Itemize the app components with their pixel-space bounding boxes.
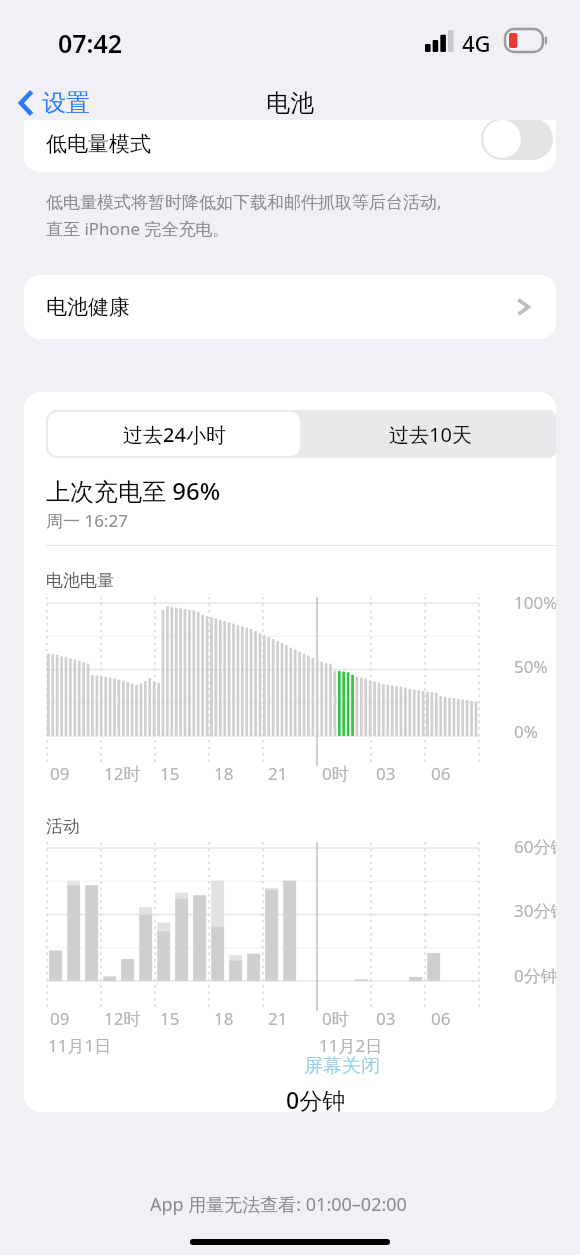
- staticText: 0时: [322, 1007, 349, 1030]
- staticText: 上次充电至 96%: [46, 474, 221, 507]
- staticText: 100%: [514, 591, 556, 614]
- staticText: 过去10天: [389, 421, 472, 448]
- staticText: 活动: [46, 816, 80, 837]
- staticText: 11月2日: [319, 1034, 383, 1057]
- staticText: 4G: [462, 28, 491, 58]
- staticText: 屏幕关闭: [304, 1054, 380, 1078]
- staticText: 50%: [514, 655, 548, 678]
- staticText: 07:42: [58, 26, 123, 60]
- staticText: 60分钟: [514, 835, 556, 858]
- staticText: 03: [376, 762, 396, 785]
- staticText: 06: [431, 1007, 451, 1030]
- button[interactable]: 低电量模式开关: [481, 120, 553, 160]
- button[interactable]: 过去10天: [304, 412, 556, 456]
- staticText: 低电量模式将暂时降低如下载和邮件抓取等后台活动, 直至 iPhone 完全充电。: [46, 190, 546, 240]
- staticText: 30分钟: [514, 899, 556, 922]
- staticText: 0%: [514, 720, 538, 743]
- staticText: 低电量模式: [46, 131, 151, 157]
- staticText: 0分钟: [514, 964, 556, 987]
- staticText: 12时: [104, 1007, 141, 1030]
- staticText: 周一 16:27: [46, 509, 128, 532]
- staticText: 18: [214, 1007, 234, 1030]
- staticText: 21: [268, 762, 288, 785]
- staticText: 15: [160, 1007, 180, 1030]
- button[interactable]: 返回 设置: [10, 78, 90, 128]
- staticText: App 用量无法查看: 01:00–02:00: [150, 1192, 407, 1217]
- staticText: 03: [376, 1007, 396, 1030]
- button[interactable]: 电池健康: [24, 275, 556, 339]
- staticText: 电池电量: [46, 570, 114, 591]
- staticText: 电池: [266, 88, 314, 118]
- button[interactable]: 过去24小时: [48, 412, 300, 456]
- staticText: 18: [214, 762, 234, 785]
- staticText: 电池健康: [46, 294, 130, 320]
- staticText: 0分钟: [286, 1084, 346, 1112]
- button[interactable]: 低电量模式: [24, 120, 556, 172]
- staticText: 21: [268, 1007, 288, 1030]
- staticText: 0时: [322, 762, 349, 785]
- staticText: 11月1日: [48, 1034, 112, 1057]
- staticText: 过去24小时: [123, 421, 226, 448]
- staticText: 15: [160, 762, 180, 785]
- staticText: 设置: [42, 88, 90, 118]
- staticText: 09: [50, 762, 70, 785]
- staticText: 06: [431, 762, 451, 785]
- staticText: 09: [50, 1007, 70, 1030]
- staticText: 12时: [104, 762, 141, 785]
